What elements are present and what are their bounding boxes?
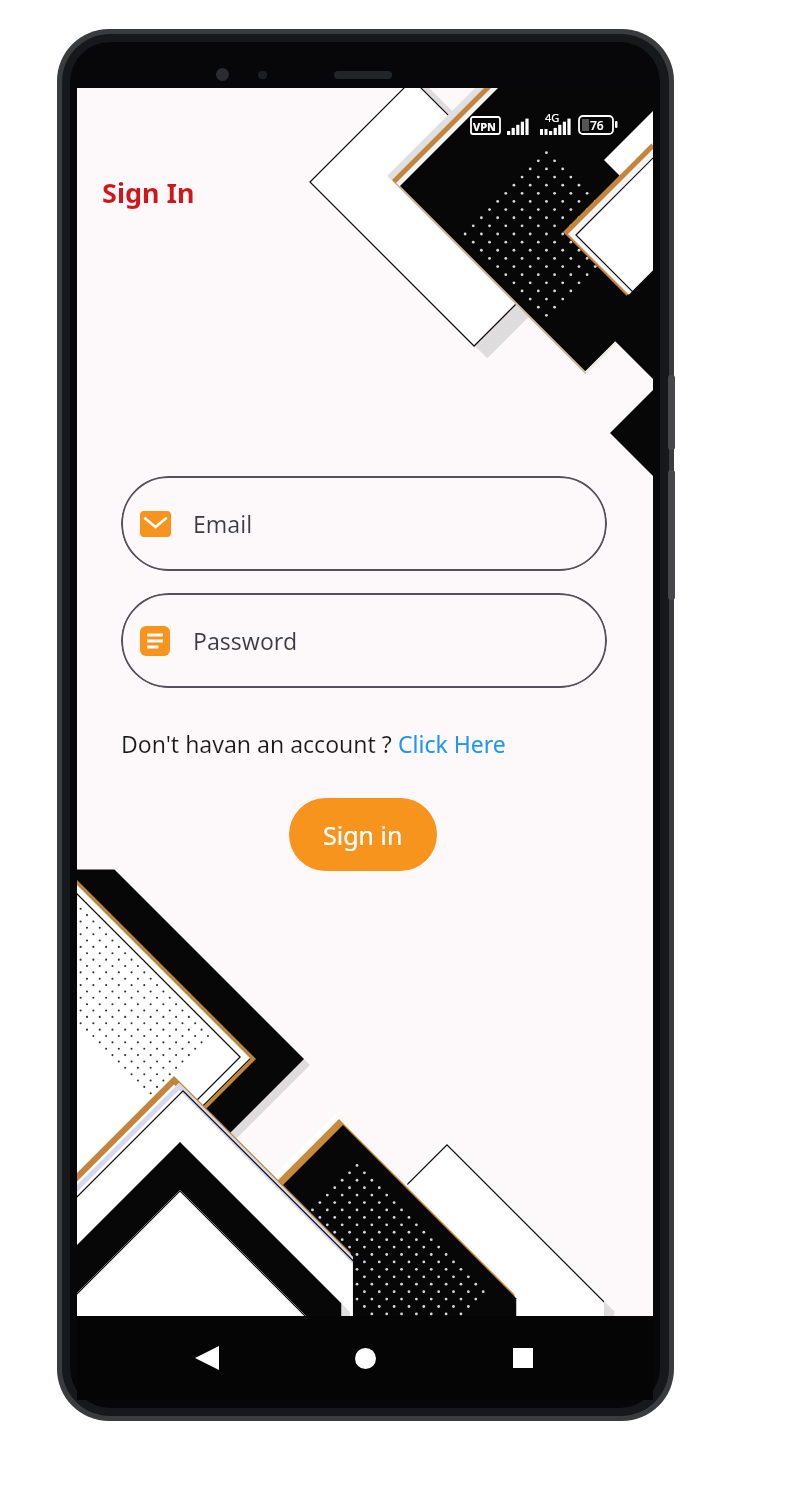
staticText: VPN — [473, 119, 496, 134]
button[interactable]: Email — [121, 476, 607, 571]
staticText: Click Here — [398, 728, 506, 759]
staticText: Email — [193, 508, 253, 539]
staticText: Password — [193, 625, 298, 656]
staticText: 76 — [590, 117, 604, 133]
staticText: Sign in — [323, 818, 403, 852]
button[interactable]: Back — [179, 1330, 235, 1386]
button[interactable]: Password — [121, 593, 607, 688]
staticText: Don't havan an account ? — [121, 728, 398, 759]
staticText: Sign In — [102, 174, 195, 211]
button[interactable]: Click Here — [398, 728, 506, 759]
button[interactable]: Sign in — [289, 798, 437, 871]
staticText: 4G — [545, 110, 560, 125]
button[interactable]: Recents — [495, 1330, 551, 1386]
button[interactable]: Home — [337, 1330, 393, 1386]
